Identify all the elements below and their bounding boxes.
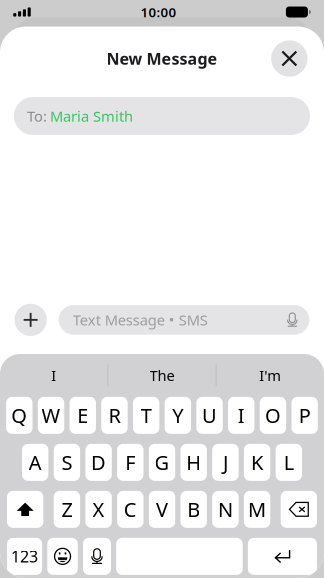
button[interactable]: Dictation — [83, 538, 111, 575]
button[interactable]: I — [228, 397, 254, 434]
button[interactable]: Q — [6, 397, 33, 434]
button[interactable]: L — [276, 444, 302, 481]
button[interactable] — [116, 538, 243, 575]
staticText: I — [51, 366, 56, 385]
staticText: E — [77, 402, 88, 429]
button[interactable]: Delete — [281, 491, 317, 528]
button[interactable]: N — [212, 491, 239, 528]
staticText: Q — [11, 402, 27, 429]
staticText: N — [218, 496, 233, 523]
button[interactable]: G — [149, 444, 175, 481]
button[interactable]: A — [22, 444, 48, 481]
button[interactable]: J — [212, 444, 239, 481]
staticText: S — [61, 449, 72, 476]
staticText: A — [29, 449, 42, 476]
button[interactable]: I'm — [217, 354, 324, 397]
staticText: To: — [27, 106, 47, 126]
staticText: 10:00 — [140, 3, 176, 21]
button[interactable]: O — [260, 397, 286, 434]
button[interactable]: U — [196, 397, 223, 434]
button[interactable]: D — [85, 444, 112, 481]
button[interactable]: B — [180, 491, 207, 528]
staticText: F — [125, 449, 135, 476]
button[interactable]: E — [70, 397, 96, 434]
button[interactable]: H — [180, 444, 207, 481]
staticText: O — [265, 402, 281, 429]
staticText: K — [251, 449, 263, 476]
button[interactable]: V — [149, 491, 175, 528]
button[interactable]: T — [133, 397, 159, 434]
button[interactable]: Y — [165, 397, 191, 434]
button[interactable]: Emoji — [47, 538, 78, 575]
button[interactable]: I — [0, 354, 107, 397]
staticText: 123 — [11, 546, 38, 567]
staticText: V — [156, 496, 168, 523]
button[interactable]: Shift — [7, 491, 43, 528]
button[interactable]: Return — [248, 538, 317, 575]
staticText: W — [42, 402, 61, 429]
staticText: I — [238, 402, 245, 429]
staticText: M — [248, 496, 266, 523]
button[interactable]: W — [38, 397, 64, 434]
staticText: C — [124, 496, 137, 523]
button[interactable]: X — [85, 491, 112, 528]
staticText: Maria Smith — [50, 106, 133, 126]
staticText: The — [149, 366, 174, 385]
staticText: D — [91, 449, 106, 476]
staticText: R — [108, 402, 120, 429]
button[interactable]: R — [101, 397, 128, 434]
button[interactable]: F — [117, 444, 143, 481]
staticText: U — [202, 402, 217, 429]
staticText: P — [299, 402, 311, 429]
staticText: Y — [172, 402, 183, 429]
staticText: X — [93, 496, 105, 523]
button[interactable]: C — [117, 491, 143, 528]
staticText: New Message — [106, 48, 217, 69]
staticText: L — [284, 449, 294, 476]
staticText: Z — [61, 496, 72, 523]
button[interactable]: K — [244, 444, 270, 481]
button[interactable]: Close — [271, 40, 307, 77]
staticText: B — [187, 496, 200, 523]
button[interactable]: The — [108, 354, 216, 397]
staticText: H — [186, 449, 201, 476]
button[interactable]: S — [54, 444, 80, 481]
button[interactable]: M — [244, 491, 270, 528]
button[interactable]: Z — [54, 491, 80, 528]
staticText: T — [141, 402, 152, 429]
staticText: Text Message • SMS — [73, 310, 208, 330]
staticText: J — [223, 449, 228, 476]
staticText: I'm — [259, 366, 281, 385]
button[interactable]: 123 — [7, 538, 42, 575]
button[interactable]: Add attachment — [14, 304, 47, 336]
staticText: G — [154, 449, 169, 476]
button[interactable]: P — [291, 397, 318, 434]
